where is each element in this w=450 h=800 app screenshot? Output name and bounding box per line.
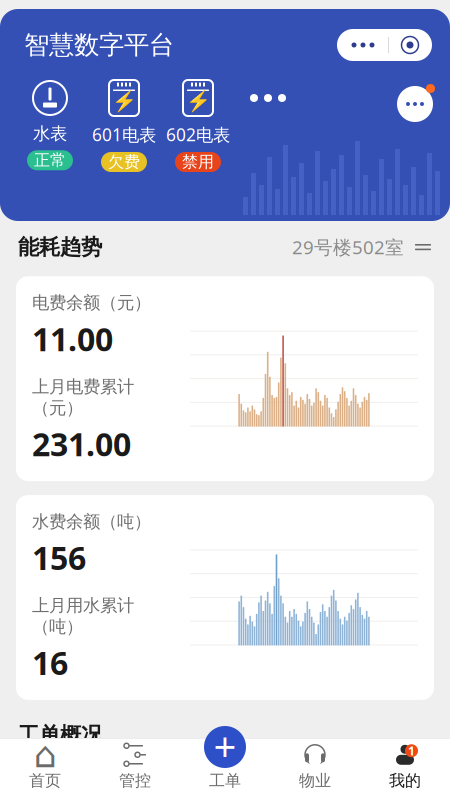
staticText: 电费余额（元） bbox=[32, 292, 151, 313]
button[interactable]: ⌂ bbox=[0, 739, 90, 795]
button[interactable]: Close bbox=[389, 30, 431, 60]
button[interactable]: 1 bbox=[360, 739, 450, 795]
staticText: 管控 bbox=[119, 771, 151, 790]
staticText: + bbox=[213, 719, 236, 772]
staticText: 上月电费累计（元） bbox=[32, 376, 134, 419]
button[interactable]: 1 bbox=[173, 780, 260, 800]
staticText: 上月用水累计（吨） bbox=[32, 595, 134, 637]
staticText: 欠费 bbox=[108, 152, 140, 172]
button[interactable]: 29号楼502室 bbox=[292, 235, 432, 259]
button[interactable]: 管控 bbox=[90, 739, 180, 795]
staticText: 水费余额（吨） bbox=[32, 511, 151, 532]
staticText: 29号楼502室 bbox=[292, 235, 404, 259]
staticText: 1 bbox=[408, 743, 415, 759]
button[interactable]: 电费余额（元） bbox=[16, 276, 434, 481]
staticText: 智慧数字平台 bbox=[24, 29, 174, 60]
staticText: 11.00 bbox=[32, 317, 113, 360]
button[interactable]: Messages bbox=[394, 83, 436, 125]
staticText: 首页 bbox=[29, 771, 61, 790]
button[interactable]: Create work order bbox=[202, 724, 248, 770]
staticText: 231.00 bbox=[32, 423, 131, 465]
staticText: 能耗趋势 bbox=[18, 234, 102, 260]
button[interactable]: 12 bbox=[347, 780, 434, 800]
staticText: 工单概况 bbox=[18, 722, 102, 748]
staticText: 12 bbox=[286, 780, 320, 800]
staticText: 602电表 bbox=[166, 123, 230, 146]
staticText: 601电表 bbox=[92, 123, 156, 146]
staticText: 物业 bbox=[299, 771, 331, 790]
button[interactable]: 工单 bbox=[180, 739, 270, 795]
staticText: 1 bbox=[208, 780, 225, 800]
staticText: 工单 bbox=[209, 771, 241, 790]
button[interactable]: ⚡ bbox=[92, 79, 156, 172]
button[interactable]: ⚡ bbox=[166, 79, 230, 172]
button[interactable]: 物业 bbox=[270, 739, 360, 795]
staticText: ⚡ bbox=[185, 90, 210, 113]
button[interactable]: More meters bbox=[240, 79, 296, 117]
staticText: 水表 bbox=[33, 123, 67, 144]
staticText: ⚡ bbox=[111, 90, 136, 113]
button[interactable]: 水费余额（吨） bbox=[16, 495, 434, 700]
button[interactable]: More bbox=[338, 30, 388, 60]
staticText: 156 bbox=[32, 536, 86, 579]
button[interactable]: 水表 bbox=[18, 79, 82, 170]
staticText: 禁用 bbox=[182, 152, 214, 172]
staticText: 0 bbox=[121, 780, 138, 800]
staticText: 正常 bbox=[34, 150, 66, 170]
button[interactable]: 0 bbox=[86, 780, 173, 800]
button[interactable]: 12 bbox=[260, 780, 347, 800]
staticText: 16 bbox=[32, 641, 68, 684]
staticText: ⌂ bbox=[33, 734, 56, 775]
staticText: 12 bbox=[373, 780, 407, 800]
staticText: 我的 bbox=[389, 771, 421, 790]
